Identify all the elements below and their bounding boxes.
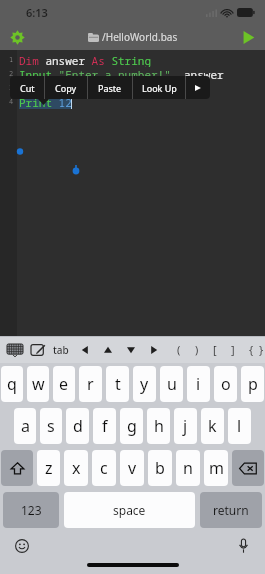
button[interactable]: j [174, 408, 197, 444]
button[interactable]: Up [102, 344, 113, 355]
staticText: ) [195, 342, 199, 357]
staticText: /HelloWorld.bas [102, 30, 178, 44]
button[interactable]: 123 [3, 492, 59, 528]
staticText: space [113, 502, 146, 518]
staticText: } [259, 342, 260, 357]
button[interactable]: g [120, 408, 143, 444]
button[interactable]: Run [237, 26, 259, 48]
button[interactable]: f [93, 408, 116, 444]
button[interactable]: u [160, 366, 183, 402]
button[interactable]: x [64, 450, 88, 486]
button[interactable]: Backspace [232, 450, 264, 486]
staticText: a [21, 415, 30, 437]
button[interactable]: t [106, 366, 129, 402]
button[interactable]: Edit [28, 340, 48, 360]
button[interactable]: y [133, 366, 156, 402]
staticText: f [102, 415, 108, 437]
button[interactable]: m [204, 450, 228, 486]
staticText: ( [177, 342, 181, 357]
staticText: Input "Enter a number!", answer [19, 67, 224, 81]
button[interactable]: o [214, 366, 237, 402]
button[interactable]: Settings [6, 26, 28, 48]
button[interactable]: Look Up [133, 76, 185, 99]
staticText: e [59, 373, 69, 395]
button[interactable]: Left [79, 344, 90, 355]
staticText: h [154, 415, 164, 437]
button[interactable]: c [92, 450, 116, 486]
button[interactable]: k [201, 408, 224, 444]
staticText: 6:13 [26, 5, 48, 20]
staticText: v [128, 457, 137, 479]
button[interactable]: a [14, 408, 36, 444]
staticText: Look Up [142, 82, 177, 94]
button[interactable]: space [64, 492, 195, 528]
staticText: Dim answer As String [19, 53, 151, 67]
staticText: 123 [21, 502, 42, 518]
staticText: Cut [20, 82, 35, 94]
staticText: 4 [9, 97, 14, 107]
staticText: m [209, 457, 224, 479]
button[interactable]: Copy [45, 76, 87, 99]
button[interactable]: i [187, 366, 210, 402]
button[interactable]: /HelloWorld.bas [88, 30, 178, 44]
button[interactable]: n [176, 450, 200, 486]
button[interactable]: p [241, 366, 264, 402]
button[interactable]: z [37, 450, 60, 486]
staticText: 1 [9, 55, 14, 65]
staticText: return [213, 502, 249, 518]
button[interactable]: b [148, 450, 172, 486]
button[interactable]: [ [207, 336, 223, 363]
button[interactable]: Down [125, 344, 136, 355]
staticText: b [155, 457, 165, 479]
staticText: r [87, 373, 94, 395]
staticText: x [72, 457, 81, 479]
staticText: j [183, 415, 188, 437]
staticText: { [249, 342, 254, 357]
button[interactable]: return [200, 492, 262, 528]
button[interactable]: ] [223, 336, 243, 363]
button[interactable]: Hide keyboard [5, 340, 25, 360]
button[interactable]: Shift [1, 450, 33, 486]
button[interactable]: h [147, 408, 170, 444]
staticText: l [237, 415, 242, 437]
button[interactable]: r [79, 366, 102, 402]
staticText: z [45, 457, 53, 479]
button[interactable]: q [1, 366, 23, 402]
button[interactable]: ) [187, 336, 207, 363]
staticText: g [127, 415, 137, 437]
button[interactable]: } [259, 336, 260, 363]
staticText: Print 12 [19, 95, 72, 109]
staticText: i [196, 373, 201, 395]
staticText: t [115, 373, 121, 395]
staticText: Copy [55, 82, 77, 94]
staticText: o [221, 373, 231, 395]
button[interactable]: e [53, 366, 75, 402]
button[interactable]: Dictation [233, 536, 253, 556]
staticText: s [47, 415, 55, 437]
staticText: Paste [98, 82, 122, 94]
button[interactable]: Emoji [12, 536, 32, 556]
staticText: 3 [9, 83, 14, 93]
button[interactable]: ( [171, 336, 187, 363]
staticText: ] [231, 342, 235, 357]
button[interactable]: { [243, 336, 259, 363]
staticText: c [100, 457, 108, 479]
button[interactable]: tab [53, 343, 69, 357]
button[interactable]: s [40, 408, 62, 444]
button[interactable]: w [27, 366, 49, 402]
button[interactable]: d [66, 408, 89, 444]
button[interactable]: Cut [10, 76, 44, 99]
staticText: q [7, 373, 17, 395]
staticText: n [183, 457, 193, 479]
staticText: p [248, 373, 258, 395]
button[interactable]: l [228, 408, 251, 444]
button[interactable]: Paste [88, 76, 132, 99]
staticText: [ [213, 342, 217, 357]
staticText: 2 [9, 69, 14, 79]
staticText: y [140, 373, 149, 395]
staticText: d [73, 415, 83, 437]
staticText: w [32, 373, 45, 395]
button[interactable]: Right [148, 344, 159, 355]
button[interactable]: v [120, 450, 144, 486]
button[interactable]: More [186, 76, 210, 99]
